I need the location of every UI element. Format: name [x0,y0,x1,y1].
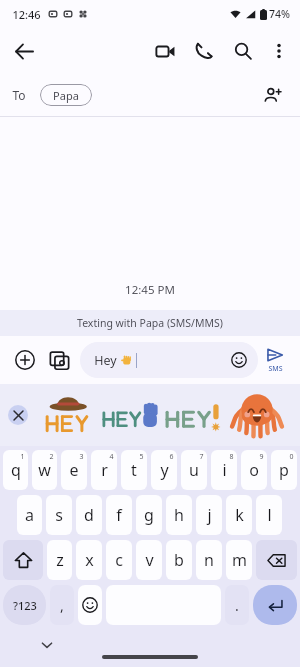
staticText: r [101,459,108,481]
button[interactable]: y [151,450,177,490]
staticText: 0 [289,452,294,462]
staticText: 12:45 PM [125,282,175,298]
button[interactable]: k [226,495,252,535]
staticText: e [69,459,79,481]
staticText: m [232,549,247,571]
button[interactable]: Papa [40,84,92,106]
staticText: 8 [229,452,234,462]
staticText: y [160,459,169,481]
staticText: o [249,459,259,481]
button[interactable]: v [136,540,162,580]
button[interactable]: i [211,450,237,490]
button[interactable]: w [32,450,57,490]
staticText: f [116,504,122,526]
staticText: Papa [53,88,79,103]
button[interactable]: Cowboy hey sticker [36,388,98,442]
button[interactable]: d [76,495,102,535]
button[interactable]: f [106,495,132,535]
button[interactable]: x [76,540,102,580]
button[interactable]: t [121,450,147,490]
staticText: 74% [269,7,290,21]
button[interactable]: Octopus sticker [222,387,292,443]
staticText: w [38,459,51,481]
button[interactable]: . [225,585,249,625]
button[interactable]: ?123 [3,585,46,625]
staticText: 1 [20,452,25,462]
button[interactable]: o [241,450,267,490]
staticText: ?123 [13,598,37,613]
staticText: l [267,504,272,526]
staticText: 9 [259,452,264,462]
staticText: 6 [169,452,174,462]
button[interactable]: r [91,450,117,490]
button[interactable]: Video call [147,33,183,69]
button[interactable]: a [17,495,42,535]
staticText: x [85,549,94,571]
staticText: n [204,549,214,571]
staticText: c [115,549,123,571]
staticText: v [145,549,154,571]
button[interactable]: Add attachment [8,343,42,377]
staticText: p [279,459,289,481]
button[interactable]: Shift [3,540,43,580]
button[interactable]: u [181,450,207,490]
staticText: . [235,596,239,615]
button[interactable]: Back [6,33,42,69]
button[interactable]: p [271,450,297,490]
button[interactable]: Hide keyboard [36,634,58,656]
staticText: u [189,459,199,481]
staticText: 5 [139,452,144,462]
staticText: i [222,459,227,481]
button[interactable]: j [196,495,222,535]
button[interactable]: Search [225,33,261,69]
button[interactable]: Backspace [256,540,297,580]
button[interactable]: z [47,540,72,580]
staticText: t [131,459,137,481]
button[interactable]: s [46,495,72,535]
staticText: s [55,504,63,526]
staticText: , [60,596,64,615]
staticText: j [207,504,212,526]
staticText: k [235,504,244,526]
button[interactable]: l [256,495,282,535]
button[interactable]: More options [262,34,296,68]
button[interactable]: Hey [80,342,258,378]
staticText: Hey [94,352,117,369]
staticText: d [84,504,94,526]
button[interactable]: n [196,540,222,580]
button[interactable]: q [3,450,28,490]
staticText: a [25,504,34,526]
button[interactable]: Call [186,33,222,69]
button[interactable]: Enter [253,585,297,625]
button[interactable]: , [50,585,74,625]
button[interactable]: h [166,495,192,535]
staticText: 4 [109,452,114,462]
staticText: q [11,459,21,481]
staticText: To [12,87,26,103]
button[interactable]: Waving hey sticker [98,388,160,442]
staticText: g [144,504,154,526]
staticText: z [56,549,64,571]
staticText: 12:46 [12,7,41,22]
button[interactable]: Emoji [226,347,252,373]
button[interactable]: Emoji keyboard [78,585,102,625]
staticText: Texting with Papa (SMS/MMS) [77,316,223,330]
button[interactable]: Hey exclamation sticker [160,388,222,442]
button[interactable]: Send SMS [258,338,292,382]
button[interactable]: e [61,450,87,490]
button[interactable]: Gallery [42,343,76,377]
staticText: 3 [79,452,84,462]
staticText: 2 [49,452,54,462]
staticText: SMS [268,364,283,374]
staticText: 7 [199,452,204,462]
staticText: b [174,549,184,571]
button[interactable]: c [106,540,132,580]
button[interactable]: m [226,540,252,580]
staticText: h [174,504,184,526]
button[interactable]: g [136,495,162,535]
button[interactable]: Add people [256,79,288,111]
button[interactable]: Dismiss suggestions [8,405,28,425]
button[interactable]: b [166,540,192,580]
